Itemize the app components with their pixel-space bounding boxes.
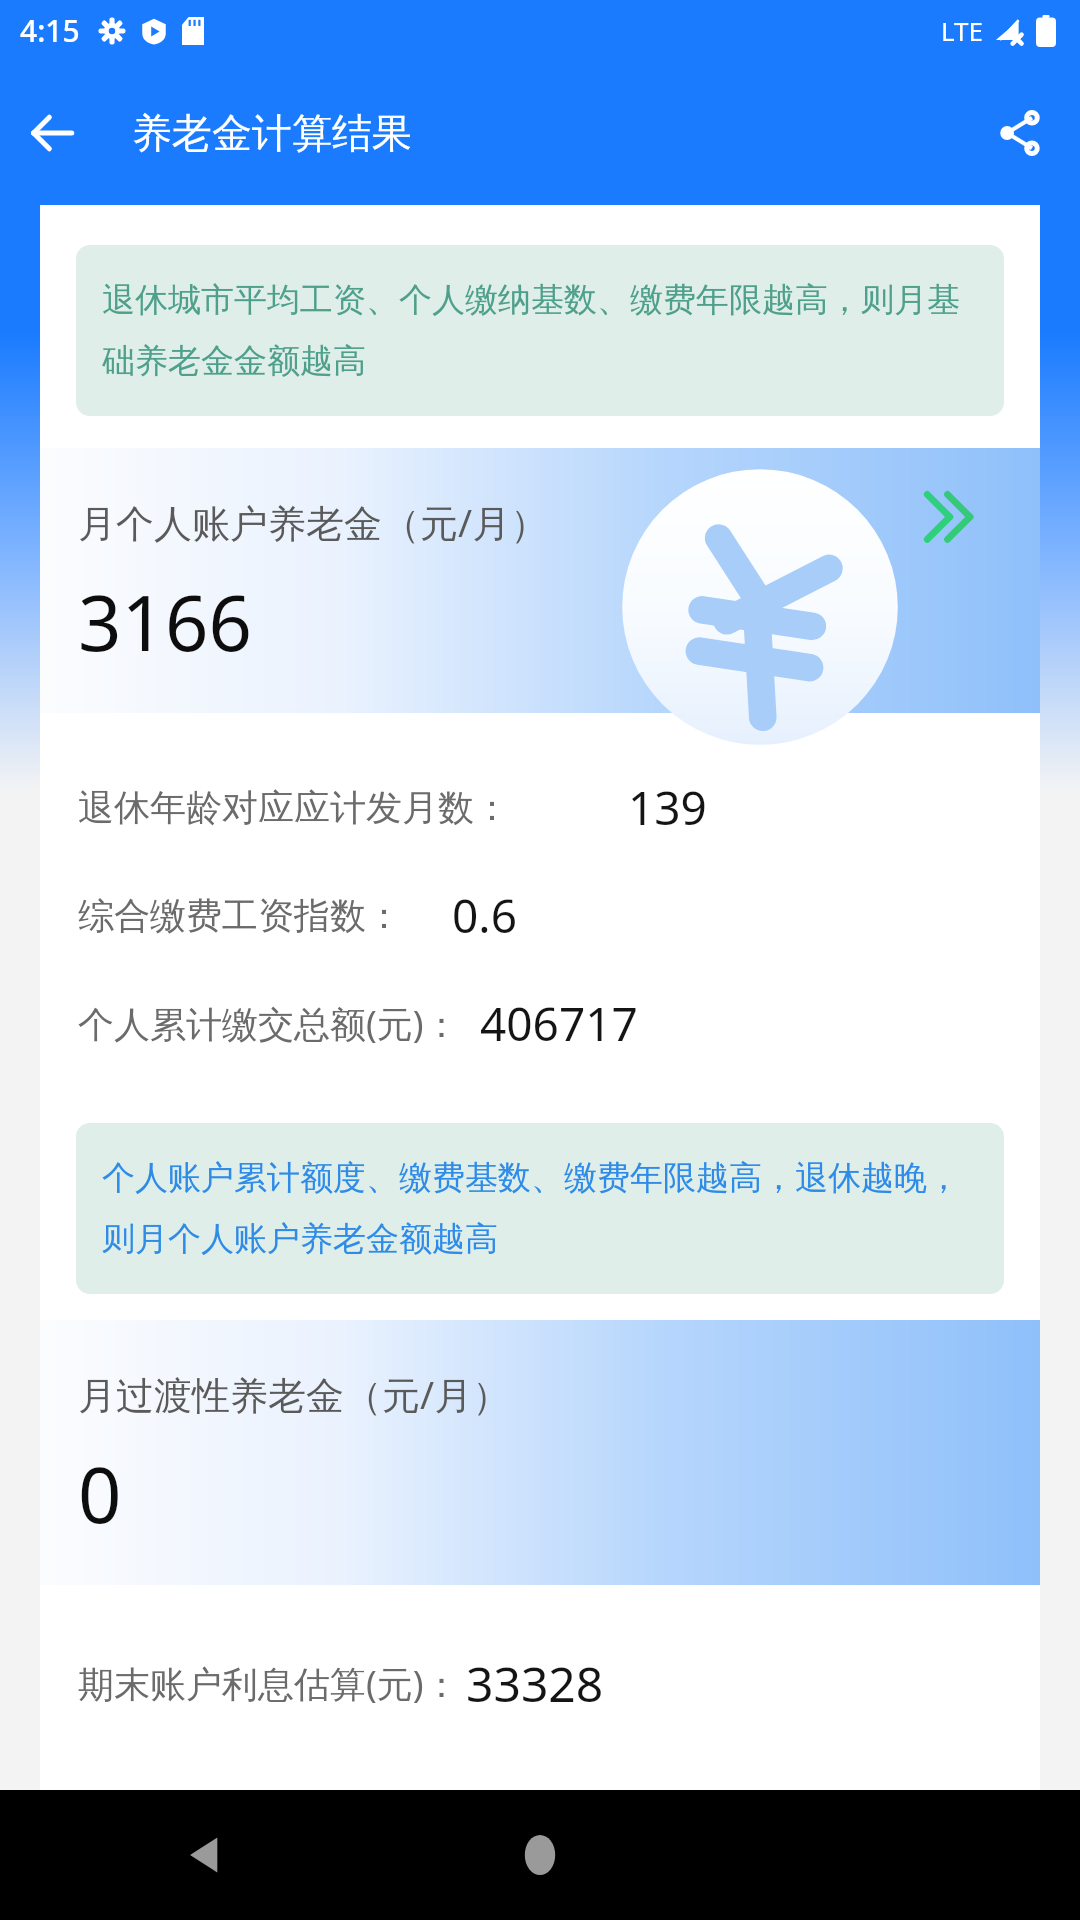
staticText: 3166 [78, 570, 252, 674]
staticText: 个人账户累计额度、缴费基数、缴费年限越高，退休越晚，则月个人账户养老金额越高 [102, 1157, 978, 1260]
staticText: 4:15 [20, 10, 80, 51]
staticText: 0 [78, 1442, 122, 1546]
staticText: 个人累计缴交总额(元)： [78, 999, 460, 1048]
button[interactable]: Share [980, 93, 1060, 173]
button[interactable]: 月过渡性养老金（元/月） [40, 1320, 1040, 1585]
button[interactable]: Back [14, 95, 90, 171]
staticText: 月个人账户养老金（元/月） [78, 496, 549, 548]
button[interactable]: 退休年龄对应应计发月数： [40, 753, 1040, 861]
staticText: 月过渡性养老金（元/月） [78, 1368, 511, 1420]
staticText: 33328 [466, 1651, 604, 1716]
button[interactable]: 个人累计缴交总额(元)： [40, 969, 1040, 1077]
staticText: 退休年龄对应应计发月数： [78, 785, 510, 830]
staticText: LTE [941, 13, 984, 48]
button[interactable]: 期末账户利息估算(元)： [40, 1629, 1040, 1737]
staticText: 0.6 [452, 884, 517, 947]
staticText: 期末账户利息估算(元)： [78, 1659, 460, 1708]
staticText: 综合缴费工资指数： [78, 893, 402, 938]
staticText: 139 [628, 776, 707, 839]
staticText: 退休城市平均工资、个人缴纳基数、缴费年限越高，则月基础养老金金额越高 [102, 279, 978, 382]
button[interactable]: Home [495, 1810, 585, 1900]
button[interactable]: 月个人账户养老金（元/月） [40, 448, 1040, 713]
button[interactable]: 综合缴费工资指数： [40, 861, 1040, 969]
staticText: 406717 [480, 992, 638, 1055]
button[interactable]: Back [160, 1810, 250, 1900]
staticText: 养老金计算结果 [132, 108, 412, 158]
